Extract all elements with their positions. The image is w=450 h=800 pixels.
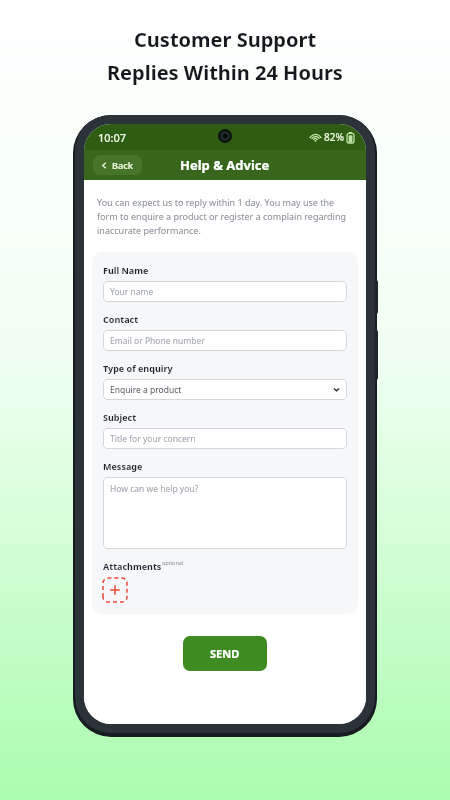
staticText: 10:07	[98, 130, 127, 145]
staticText: Replies Within 24 Hours	[107, 59, 343, 86]
staticText: Type of enquiry	[103, 362, 173, 374]
staticText: optional	[162, 559, 184, 566]
button[interactable]: Enquire a product	[103, 379, 347, 400]
button[interactable]: SEND	[183, 636, 267, 671]
staticText: Your name	[110, 286, 154, 298]
staticText: Enquire a product	[110, 384, 182, 396]
staticText: How can we help you?	[110, 483, 199, 495]
staticText: You can expect us to reply within 1 day.…	[97, 196, 351, 237]
staticText: Subject	[103, 411, 137, 423]
button[interactable]: Add attachment	[103, 578, 127, 602]
staticText: 82%	[324, 130, 344, 144]
staticText: Full Name	[103, 264, 149, 276]
staticText: Back	[112, 159, 134, 171]
staticText: Help & Advice	[180, 156, 270, 174]
button[interactable]: Title for your concern	[103, 428, 347, 449]
staticText: Attachments	[103, 560, 162, 572]
staticText: Title for your concern	[110, 433, 196, 445]
staticText: Customer Support	[134, 26, 317, 53]
button[interactable]: Your name	[103, 281, 347, 302]
staticText: SEND	[210, 646, 240, 661]
button[interactable]: How can we help you?	[103, 477, 347, 549]
staticText: Message	[103, 460, 143, 472]
button[interactable]: Back	[93, 155, 142, 175]
button[interactable]: Email or Phone number	[103, 330, 347, 351]
staticText: Contact	[103, 313, 139, 325]
staticText: Email or Phone number	[110, 335, 205, 347]
